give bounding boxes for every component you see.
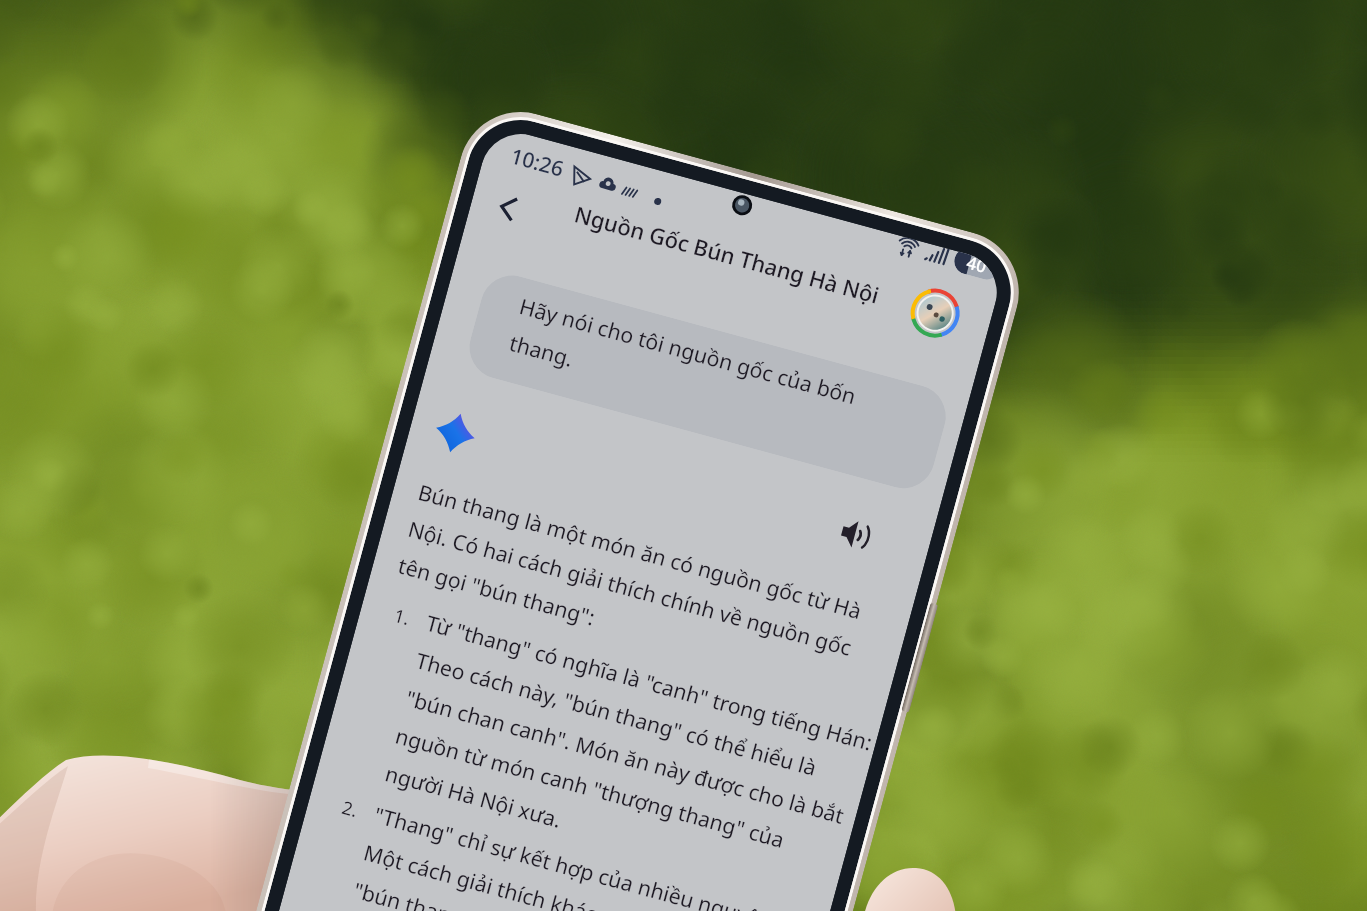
button[interactable]: Account <box>905 283 965 343</box>
button[interactable]: Power <box>901 603 938 713</box>
staticText: Nguồn Gốc Bún Thang Hà Nội <box>571 198 883 310</box>
staticText: 10:26 <box>507 141 567 184</box>
button[interactable]: Nguồn Gốc Bún Thang Hà Nội <box>571 198 883 310</box>
staticText: Bún thang là một món ăn có nguồn gốc từ … <box>395 477 892 706</box>
staticText: "Thang" chỉ sự kết hợp của nhiều nguyên … <box>340 800 824 911</box>
button[interactable]: Hãy nói cho tôi nguồn gốc của bốn thang. <box>462 268 953 495</box>
staticText: 1. <box>391 603 413 631</box>
staticText: Từ "thang" có nghĩa là "canh" trong tiến… <box>382 608 876 907</box>
staticText: 2. <box>339 795 361 823</box>
staticText: 40 <box>964 254 988 278</box>
button[interactable]: Read aloud <box>831 509 882 561</box>
button[interactable]: Back <box>480 180 535 235</box>
staticText: Hãy nói cho tôi nguồn gốc của bốn thang. <box>506 291 910 461</box>
